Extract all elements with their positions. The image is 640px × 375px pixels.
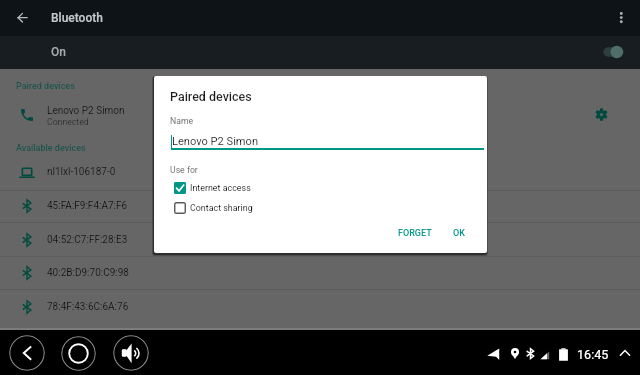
button[interactable]: Volume — [113, 335, 149, 371]
button[interactable]: nl1lxl-106187-0 — [0, 155, 640, 188]
staticText: Internet access — [190, 183, 251, 193]
button[interactable]: Back — [9, 335, 45, 371]
button[interactable]: 78:4F:43:6C:6A:76 — [0, 290, 640, 323]
staticText: Lenovo P2 Simon — [172, 135, 259, 148]
button[interactable]: Contact sharing — [174, 200, 253, 216]
button[interactable]: 40:2B:D9:70:C9:98 — [0, 256, 640, 289]
staticText: Lenovo P2 Simon — [47, 105, 125, 117]
staticText: 04:52:C7:FF:28:E3 — [47, 234, 128, 246]
button[interactable]: 04:52:C7:FF:28:E3 — [0, 223, 640, 256]
button[interactable]: Device settings — [589, 102, 613, 126]
staticText: FORGET — [398, 228, 432, 239]
other: Mobile signal — [540, 350, 550, 360]
staticText: On — [51, 45, 66, 59]
other: Navigation — [487, 346, 500, 360]
staticText: Bluetooth — [51, 11, 103, 25]
staticText: 45:FA:F9:F4:A7:F6 — [47, 200, 128, 212]
staticText: Connected — [47, 117, 89, 127]
staticText: 78:4F:43:6C:6A:76 — [47, 301, 129, 313]
other: Battery — [557, 348, 570, 361]
button[interactable]: More options — [613, 7, 631, 25]
staticText: Name — [170, 116, 194, 126]
other: Bluetooth — [524, 347, 537, 360]
button[interactable]: On — [0, 36, 640, 69]
button[interactable]: 45:FA:F9:F4:A7:F6 — [0, 189, 640, 222]
staticText: Paired devices — [16, 81, 75, 92]
staticText: Use for — [170, 165, 198, 175]
staticText: Available devices — [16, 143, 86, 154]
staticText: nl1lxl-106187-0 — [47, 166, 116, 178]
other: Expand status bar — [619, 347, 631, 359]
button[interactable]: Navigate up — [6, 2, 38, 34]
button[interactable]: Internet access — [174, 180, 251, 196]
staticText: 16:45 — [577, 347, 609, 362]
button[interactable]: Lenovo P2 Simon — [0, 97, 640, 131]
other: Location — [511, 348, 519, 359]
button[interactable]: OK — [445, 223, 473, 243]
staticText: Contact sharing — [190, 203, 253, 213]
button[interactable]: Home — [61, 336, 96, 371]
staticText: 40:2B:D9:70:C9:98 — [47, 267, 129, 279]
staticText: OK — [453, 228, 465, 239]
staticText: Paired devices — [170, 89, 252, 104]
button[interactable]: FORGET — [390, 223, 440, 243]
